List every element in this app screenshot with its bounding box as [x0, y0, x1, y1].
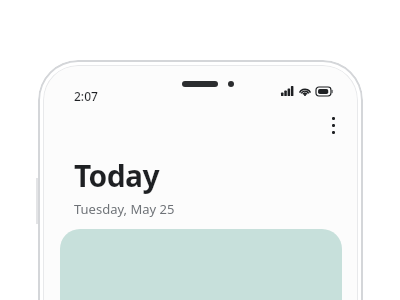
- staticText: Tuesday, May 25: [74, 200, 175, 218]
- button[interactable]: More options: [317, 109, 349, 141]
- button[interactable]: Today card: [60, 229, 342, 300]
- staticText: Today: [74, 155, 160, 196]
- staticText: 2:07: [74, 88, 98, 104]
